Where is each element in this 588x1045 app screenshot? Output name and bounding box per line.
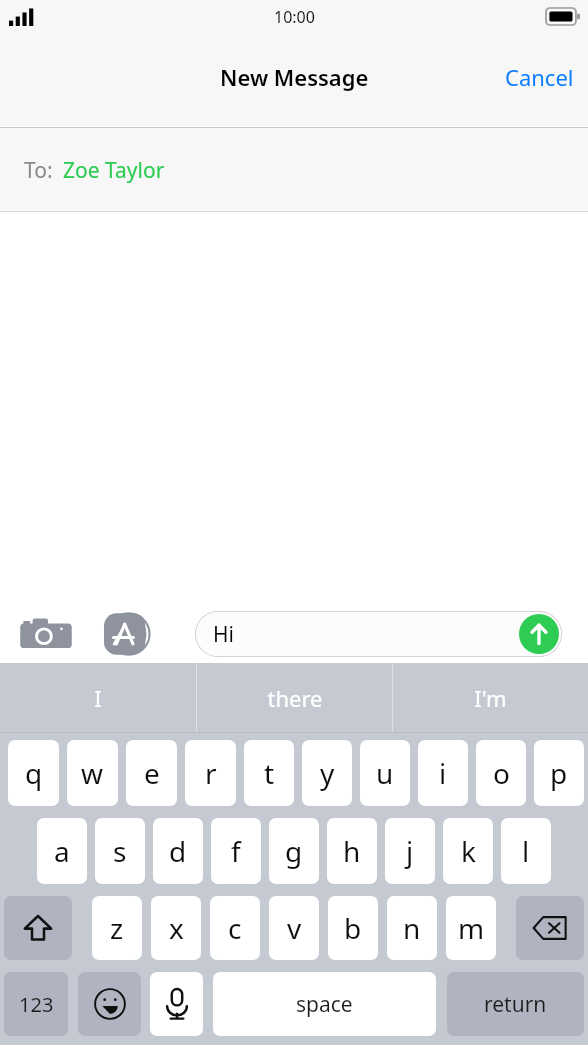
staticText: v [287, 909, 302, 947]
staticText: n [403, 909, 421, 947]
button[interactable]: v [269, 896, 319, 960]
staticText: m [458, 909, 485, 947]
button[interactable]: i [418, 740, 468, 806]
button[interactable]: return [447, 972, 584, 1036]
button[interactable]: w [67, 740, 118, 806]
button[interactable]: Cancel [491, 52, 588, 102]
staticText: z [110, 909, 124, 947]
button[interactable]: I [0, 663, 196, 733]
button[interactable]: j [385, 818, 435, 884]
button[interactable]: Send [519, 614, 559, 654]
button[interactable]: d [153, 818, 203, 884]
staticText: q [25, 754, 43, 792]
staticText: I'm [474, 683, 507, 713]
staticText: space [296, 990, 353, 1019]
staticText: i [439, 754, 447, 792]
staticText: k [461, 832, 476, 870]
staticText: Zoe Taylor [63, 156, 165, 185]
button[interactable]: y [302, 740, 352, 806]
staticText: u [376, 754, 394, 792]
button[interactable]: c [210, 896, 260, 960]
staticText: g [285, 832, 303, 870]
staticText: x [169, 909, 184, 947]
button[interactable]: Emoji [78, 972, 141, 1036]
button[interactable]: Key [4, 896, 72, 960]
button[interactable]: k [443, 818, 493, 884]
staticText: t [264, 754, 275, 792]
staticText: return [484, 990, 547, 1019]
button[interactable]: u [360, 740, 410, 806]
staticText: I [94, 683, 102, 713]
staticText: p [550, 754, 568, 792]
button[interactable]: Hi [195, 611, 562, 657]
button[interactable]: n [387, 896, 437, 960]
other: Backspace [533, 915, 567, 941]
staticText: b [344, 909, 362, 947]
button[interactable]: l [501, 818, 551, 884]
staticText: e [144, 754, 160, 792]
button[interactable]: App Store [104, 611, 166, 657]
button[interactable]: r [185, 740, 236, 806]
staticText: y [320, 754, 335, 792]
staticText: there [267, 683, 323, 713]
button[interactable]: f [211, 818, 261, 884]
button[interactable]: s [95, 818, 145, 884]
button[interactable]: Key [516, 896, 584, 960]
staticText: o [493, 754, 510, 792]
button[interactable]: t [244, 740, 294, 806]
button[interactable]: g [269, 818, 319, 884]
button[interactable]: q [8, 740, 59, 806]
button[interactable]: b [328, 896, 378, 960]
staticText: j [406, 832, 414, 870]
staticText: d [169, 832, 187, 870]
button[interactable]: Dictate [150, 972, 203, 1036]
staticText: New Message [220, 62, 369, 92]
staticText: f [231, 832, 241, 870]
staticText: l [522, 832, 530, 870]
staticText: a [54, 832, 70, 870]
staticText: Cancel [505, 62, 574, 92]
button[interactable]: 123 [4, 972, 68, 1036]
staticText: 10:00 [274, 6, 315, 28]
button[interactable]: z [92, 896, 142, 960]
button[interactable]: space [213, 972, 436, 1036]
button[interactable]: e [126, 740, 177, 806]
staticText: h [343, 832, 361, 870]
staticText: s [113, 832, 127, 870]
staticText: r [205, 754, 217, 792]
button[interactable]: o [476, 740, 526, 806]
staticText: 123 [19, 991, 54, 1018]
button[interactable]: x [151, 896, 201, 960]
button[interactable]: I'm [393, 663, 588, 733]
staticText: Hi [213, 620, 234, 649]
staticText: c [228, 909, 242, 947]
button[interactable]: Camera [18, 612, 74, 656]
button[interactable]: p [534, 740, 584, 806]
staticText: w [81, 754, 104, 792]
other: Shift [23, 913, 53, 943]
button[interactable]: a [37, 818, 87, 884]
button[interactable]: m [446, 896, 496, 960]
staticText: To: [24, 156, 53, 185]
button[interactable]: To: [0, 128, 588, 212]
button[interactable]: h [327, 818, 377, 884]
button[interactable]: there [197, 663, 392, 733]
